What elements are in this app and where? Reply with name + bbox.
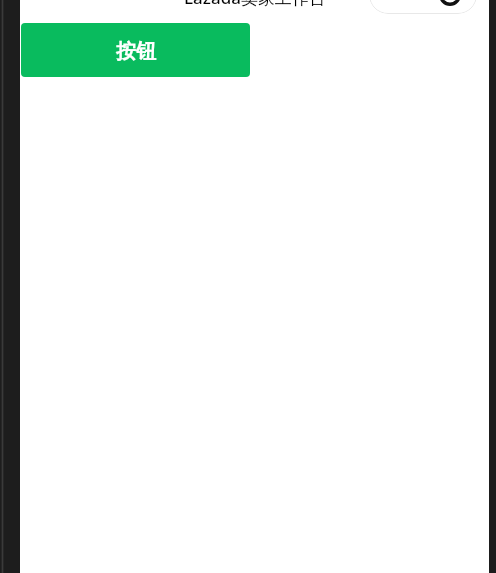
button[interactable]: Close: [423, 0, 477, 14]
button[interactable]: Lazada卖家工作台: [20, 0, 489, 19]
staticText: 按钮: [116, 39, 156, 64]
staticText: Lazada卖家工作台: [184, 0, 326, 9]
button[interactable]: More options: [369, 0, 423, 14]
button[interactable]: 按钮: [21, 23, 250, 77]
